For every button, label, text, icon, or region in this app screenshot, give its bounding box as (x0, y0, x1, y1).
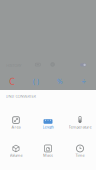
button[interactable]: Mass (32, 145, 64, 158)
staticText: Time (75, 153, 84, 158)
staticText: C (9, 75, 15, 87)
button[interactable]: Length (32, 116, 64, 129)
button[interactable]: Volume (0, 145, 32, 158)
staticText: Length (42, 124, 53, 129)
button[interactable]: % (48, 77, 72, 86)
staticText: Volume (9, 153, 22, 158)
button[interactable]: Settings (50, 62, 55, 67)
button[interactable]: ÷ (72, 76, 96, 86)
staticText: ÷ (81, 76, 86, 86)
staticText: % (57, 77, 63, 86)
staticText: Mass (43, 153, 53, 158)
staticText: Temperature (68, 124, 91, 129)
button[interactable]: Area (0, 116, 32, 129)
staticText: UNIT CONVERTER (5, 93, 35, 99)
button[interactable]: ( ) (24, 77, 48, 86)
button[interactable]: C (0, 75, 24, 87)
button[interactable]: Temperature (64, 116, 96, 129)
staticText: ( ) (33, 77, 39, 86)
staticText: Area (11, 124, 20, 129)
button[interactable]: Time (64, 145, 96, 158)
button[interactable]: Toggle (80, 63, 86, 66)
